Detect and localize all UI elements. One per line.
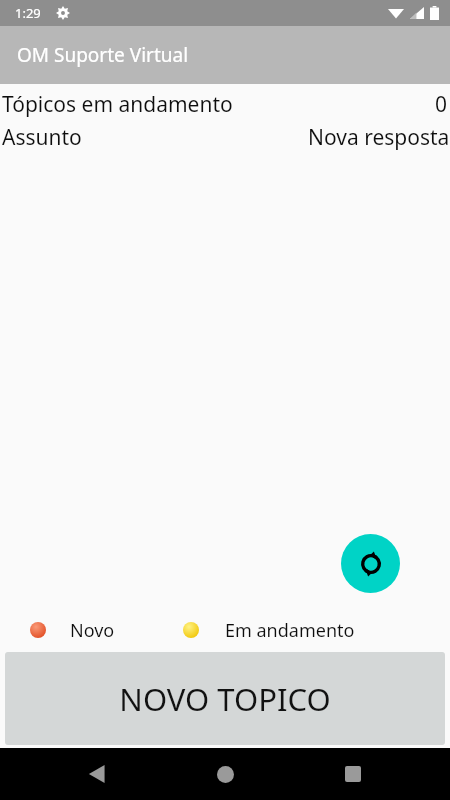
button[interactable]: OM Suporte Virtual bbox=[0, 26, 450, 84]
staticText: Em andamento bbox=[225, 618, 355, 643]
button[interactable]: Back bbox=[66, 748, 128, 800]
staticText: OM Suporte Virtual bbox=[17, 42, 189, 68]
button[interactable]: Tópicos em andamento bbox=[0, 90, 450, 119]
staticText: 1:29 bbox=[15, 4, 41, 22]
staticText: 0 bbox=[435, 90, 448, 119]
staticText: Assunto bbox=[2, 123, 82, 152]
button[interactable]: Recent apps bbox=[322, 748, 384, 800]
staticText: Tópicos em andamento bbox=[2, 90, 233, 119]
button[interactable]: Home bbox=[194, 748, 256, 800]
button[interactable]: Assunto bbox=[0, 123, 450, 152]
button[interactable]: Refresh bbox=[341, 534, 400, 593]
staticText: Novo bbox=[70, 618, 115, 643]
staticText: Nova resposta bbox=[308, 123, 450, 152]
staticText: NOVO TOPICO bbox=[119, 678, 331, 720]
button[interactable]: NOVO TOPICO bbox=[5, 652, 445, 745]
